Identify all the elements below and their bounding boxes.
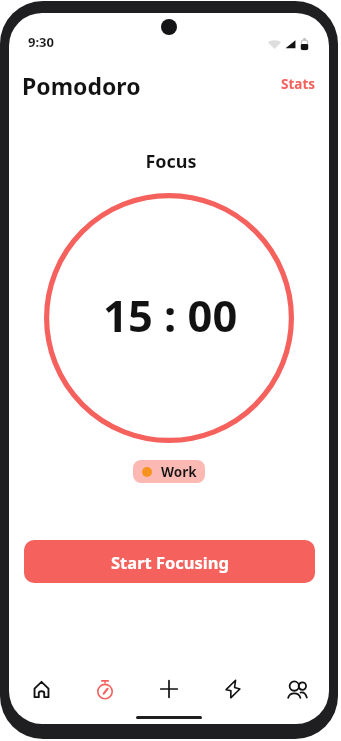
button[interactable]: Start Focusing (24, 540, 315, 583)
staticText: Pomodoro (22, 70, 141, 101)
staticText: Work (161, 463, 197, 481)
button[interactable]: Focus boost (201, 666, 265, 712)
staticText: Start Focusing (111, 551, 229, 573)
button[interactable]: Add session (137, 666, 201, 712)
staticText: Stats (281, 75, 316, 93)
button[interactable]: Home (9, 666, 73, 712)
staticText: 9:30 (28, 33, 54, 51)
staticText: 15 : 00 (103, 285, 238, 344)
staticText: Focus (11, 149, 329, 174)
button[interactable]: Stats (268, 66, 329, 104)
button[interactable]: Timer (73, 666, 137, 712)
button[interactable]: Work (133, 460, 205, 483)
button[interactable]: Friends (265, 666, 329, 712)
